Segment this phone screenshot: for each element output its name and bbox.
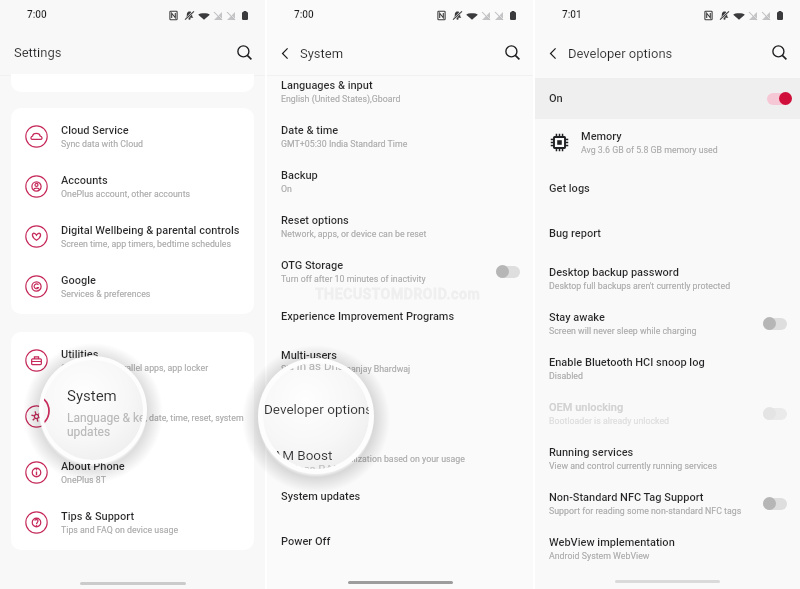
button[interactable]: Non-Standard NFC Tag Support <box>535 481 800 526</box>
staticText: RAM Boost <box>281 439 337 452</box>
button[interactable]: RAM Boost <box>267 429 533 474</box>
staticText: Game space, parallel apps, app locker <box>61 363 209 373</box>
staticText: On <box>549 92 563 105</box>
button[interactable]: Accounts <box>11 161 254 211</box>
staticText: Screen will never sleep while charging <box>549 326 697 336</box>
button[interactable]: Memory <box>535 119 800 166</box>
staticText: Bug report <box>549 227 601 240</box>
staticText: Backup <box>281 169 318 182</box>
button[interactable]: Developer options <box>267 384 533 429</box>
button[interactable]: Get logs <box>535 166 800 211</box>
staticText: Optimizes RAM utilization based on your … <box>281 454 465 464</box>
staticText: Language & keyboard, date, time, reset, … <box>61 413 246 434</box>
button[interactable]: OTG Storage <box>267 249 533 294</box>
button[interactable]: About Phone <box>11 447 254 497</box>
staticText: GMT+05:30 India Standard Time <box>281 139 408 149</box>
button[interactable]: Experience Improvement Programs <box>267 294 533 339</box>
button[interactable]: Toggle <box>763 407 787 420</box>
button[interactable]: Utilities <box>11 335 254 385</box>
staticText: WebView implementation <box>549 536 675 549</box>
button[interactable]: On <box>535 78 800 119</box>
staticText: Languages & input <box>281 79 373 92</box>
button[interactable]: Desktop backup password <box>535 256 800 301</box>
staticText: Settings <box>14 45 62 60</box>
staticText: Utilities <box>61 348 99 361</box>
staticText: Accounts <box>61 174 108 187</box>
staticText: Developer options <box>281 400 371 413</box>
button[interactable]: Cloud Service <box>11 111 254 161</box>
staticText: Language & ke <box>67 411 143 425</box>
button[interactable]: Search <box>504 44 522 62</box>
staticText: Memory <box>581 130 622 143</box>
button[interactable]: System <box>11 385 254 447</box>
button[interactable]: Running services <box>535 436 800 481</box>
staticText: Developer options <box>264 401 369 417</box>
button[interactable]: System updates <box>267 474 533 519</box>
staticText: Optimizes RAM utilization <box>264 462 369 469</box>
button[interactable]: Google <box>11 261 254 311</box>
button[interactable]: Bug report <box>535 211 800 256</box>
button[interactable]: Toggle <box>496 265 520 278</box>
staticText: Signed in as Dhananjay Bhardwaj <box>281 364 411 374</box>
staticText: Developer options <box>568 46 673 61</box>
button[interactable]: Digital Wellbeing & parental controls <box>11 211 254 261</box>
staticText: Sync data with Cloud <box>61 139 143 149</box>
staticText: English (United States),Gboard <box>281 94 401 104</box>
button[interactable]: Search <box>236 44 254 62</box>
staticText: Experience Improvement Programs <box>281 310 455 323</box>
staticText: System <box>61 398 98 411</box>
button[interactable]: OEM unlocking <box>535 391 800 436</box>
staticText: Desktop backup password <box>549 266 679 279</box>
button[interactable]: Back <box>275 43 295 63</box>
staticText: On <box>281 184 292 194</box>
staticText: Reset options <box>281 214 349 227</box>
staticText: updates <box>67 425 111 439</box>
staticText: Multi-users <box>281 349 337 362</box>
staticText: Signed in as Dhananjay Bhardwaj <box>263 363 369 372</box>
staticText: Tips and FAQ on device usage <box>61 525 179 535</box>
staticText: OnePlus account, other accounts <box>61 189 191 199</box>
staticText: Avg 3.6 GB of 5.8 GB memory used <box>581 145 718 155</box>
staticText: Turn off after 10 minutes of inactivity <box>281 274 426 284</box>
button[interactable]: Backup <box>267 159 533 204</box>
staticText: Digital Wellbeing & parental controls <box>61 224 240 237</box>
staticText: Tips & Support <box>61 510 135 523</box>
staticText: View and control currently running servi… <box>549 461 717 471</box>
staticText: Cloud Service <box>61 124 129 137</box>
button[interactable]: Reset options <box>267 204 533 249</box>
button[interactable]: Back <box>543 43 563 63</box>
staticText: 7:00 <box>294 9 314 21</box>
staticText: Screen time, app timers, bedtime schedul… <box>61 239 232 249</box>
staticText: Disabled <box>549 371 583 381</box>
button[interactable]: Toggle <box>767 92 791 105</box>
button[interactable]: Toggle <box>763 497 787 510</box>
staticText: Stay awake <box>549 311 605 324</box>
staticText: Date & time <box>281 124 339 137</box>
button[interactable]: Languages & input <box>267 69 533 114</box>
staticText: Running services <box>549 446 634 459</box>
button[interactable]: Stay awake <box>535 301 800 346</box>
button[interactable]: Tips & Support <box>11 497 254 547</box>
staticText: Services & preferences <box>61 289 151 299</box>
button[interactable]: Toggle <box>763 317 787 330</box>
staticText: Bootloader is already unlocked <box>549 416 670 426</box>
staticText: 7:00 <box>27 9 47 21</box>
button[interactable]: Enable Bluetooth HCI snoop log <box>535 346 800 391</box>
button[interactable]: WebView implementation <box>535 526 800 571</box>
staticText: About Phone <box>61 460 125 473</box>
staticText: OnePlus 8T <box>61 475 107 485</box>
staticText: Power Off <box>281 535 331 548</box>
staticText: Android System WebView <box>549 551 650 561</box>
button[interactable]: Search <box>771 44 789 62</box>
staticText: Desktop full backups aren't currently pr… <box>549 281 731 291</box>
staticText: Enable Bluetooth HCI snoop log <box>549 356 705 369</box>
button[interactable]: Date & time <box>267 114 533 159</box>
staticText: THECUSTOMDROID.com <box>315 286 481 302</box>
button[interactable]: Power Off <box>267 519 533 564</box>
staticText: OTG Storage <box>281 259 344 272</box>
staticText: Non-Standard NFC Tag Support <box>549 491 704 504</box>
staticText: System updates <box>281 490 361 503</box>
staticText: Google <box>61 274 96 287</box>
button[interactable]: Multi-users <box>267 339 533 384</box>
staticText: Network, apps, or device can be reset <box>281 229 427 239</box>
